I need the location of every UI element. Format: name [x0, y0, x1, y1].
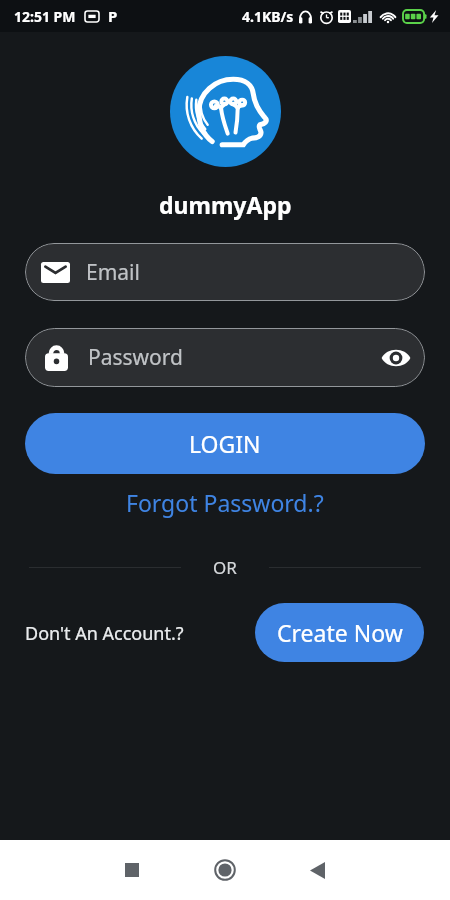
staticText: 4.1KB/s: [242, 7, 294, 26]
button[interactable]: Forgot Password.?: [120, 484, 330, 521]
staticText: Don't An Account.?: [25, 621, 184, 646]
button[interactable]: Toggle password visibility: [381, 347, 411, 369]
staticText: P: [108, 6, 118, 26]
staticText: Email: [86, 258, 140, 287]
button[interactable]: Home: [197, 842, 253, 898]
staticText: Create Now: [277, 617, 403, 648]
staticText: Password: [88, 343, 183, 372]
button[interactable]: Password: [25, 328, 425, 387]
staticText: OR: [213, 556, 237, 578]
staticText: LOGIN: [189, 428, 261, 459]
button[interactable]: LOGIN: [25, 413, 425, 474]
button[interactable]: Create Now: [255, 603, 424, 662]
button[interactable]: Email: [25, 243, 425, 301]
button[interactable]: Recent apps: [104, 842, 160, 898]
staticText: Forgot Password.?: [126, 487, 324, 518]
staticText: 12:51 PM: [14, 7, 76, 26]
button[interactable]: Back: [289, 842, 345, 898]
staticText: dummyApp: [159, 189, 292, 220]
